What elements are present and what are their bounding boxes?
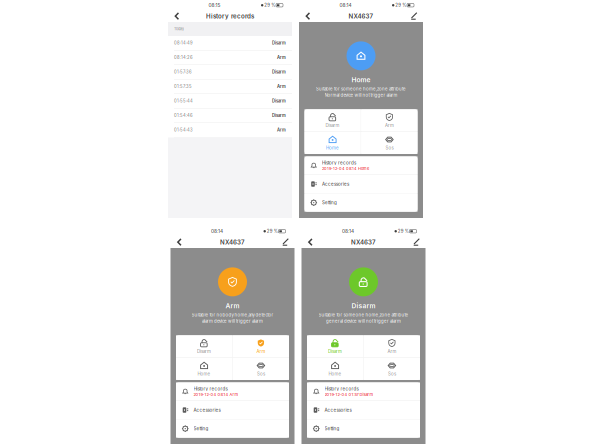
button[interactable]: Disarm: [176, 335, 232, 357]
staticText: Suitable for nobody home,any detector: [191, 312, 273, 318]
button[interactable]: History records: [304, 156, 417, 174]
staticText: NX4637: [351, 238, 376, 246]
staticText: History records: [322, 160, 356, 165]
staticText: Disarm: [272, 98, 286, 103]
button[interactable]: Setting: [307, 420, 420, 438]
staticText: 01:57:36: [174, 69, 192, 74]
button[interactable]: Edit: [405, 10, 423, 22]
button[interactable]: History records: [176, 382, 289, 400]
staticText: Normal device will not trigger alarm: [324, 93, 397, 98]
staticText: Today: [174, 27, 184, 31]
staticText: 08:15: [208, 2, 220, 8]
staticText: Setting: [193, 426, 208, 431]
staticText: 08:14:26: [174, 55, 193, 60]
staticText: 01:55:44: [174, 98, 193, 103]
button[interactable]: Home: [307, 358, 363, 380]
staticText: Sos: [385, 145, 393, 151]
staticText: Accessories: [324, 407, 351, 413]
button[interactable]: Arm: [361, 109, 417, 131]
staticText: 01:57:35: [174, 84, 192, 89]
button[interactable]: Arm: [233, 335, 289, 357]
staticText: 2019-12-04 08:14 Arm: [193, 392, 238, 397]
staticText: Accessories: [322, 181, 349, 187]
staticText: Suitable for someone home,zone attribute: [316, 86, 406, 92]
staticText: Disarm: [272, 69, 286, 74]
staticText: History records: [324, 386, 358, 391]
staticText: 29 %: [395, 3, 406, 8]
button[interactable]: Arm: [364, 335, 420, 357]
button[interactable]: Disarm: [307, 335, 363, 357]
button[interactable]: Back: [301, 236, 319, 248]
staticText: Disarm: [197, 349, 211, 354]
staticText: Arm: [256, 349, 265, 354]
button[interactable]: History records: [307, 382, 420, 400]
staticText: History records: [206, 12, 254, 20]
staticText: 08:14:49: [174, 40, 193, 45]
staticText: Home: [198, 371, 211, 377]
staticText: 2019-12-04 01:57 Disarm: [324, 392, 373, 397]
button[interactable]: Setting: [304, 194, 417, 212]
button[interactable]: Sos: [233, 358, 289, 380]
staticText: Sos: [388, 371, 396, 377]
staticText: Suitable for someone home,zone attribute: [318, 312, 408, 318]
staticText: Disarm: [326, 123, 340, 128]
button[interactable]: Sos: [361, 132, 417, 154]
staticText: Home: [329, 371, 342, 377]
button[interactable]: Sos: [364, 358, 420, 380]
button[interactable]: Edit: [276, 236, 294, 248]
staticText: NX4637: [348, 12, 373, 20]
staticText: 29 %: [398, 229, 409, 234]
staticText: Arm: [385, 123, 394, 128]
staticText: Setting: [324, 426, 339, 431]
staticText: 29 %: [267, 229, 278, 234]
staticText: 29 %: [264, 3, 275, 8]
button[interactable]: Accessories: [176, 401, 289, 419]
staticText: 08:14: [211, 228, 223, 234]
button[interactable]: Disarm: [304, 109, 361, 131]
staticText: 08:14: [339, 2, 351, 8]
button[interactable]: Accessories: [307, 401, 420, 419]
staticText: Disarm: [272, 40, 286, 45]
staticText: Arm: [277, 84, 286, 89]
button[interactable]: Home: [176, 358, 232, 380]
staticText: Arm: [277, 127, 286, 132]
staticText: alarm device will trigger alarm: [202, 319, 263, 324]
staticText: 2019-12-04 08:14 Home: [322, 166, 369, 171]
button[interactable]: Back: [168, 10, 186, 22]
staticText: NX4637: [220, 238, 245, 246]
staticText: general device will not trigger alarm: [326, 319, 401, 324]
button[interactable]: Edit: [407, 236, 425, 248]
button[interactable]: Back: [170, 236, 188, 248]
staticText: 01:54:43: [174, 127, 193, 132]
staticText: History records: [193, 386, 227, 391]
staticText: Accessories: [193, 407, 220, 413]
button[interactable]: Back: [299, 10, 317, 22]
staticText: Disarm: [272, 113, 286, 118]
button[interactable]: Setting: [176, 420, 289, 438]
staticText: Arm: [225, 302, 239, 310]
staticText: Home: [351, 76, 370, 84]
staticText: Arm: [277, 55, 286, 60]
staticText: 01:54:46: [174, 113, 193, 118]
button[interactable]: Accessories: [304, 175, 417, 193]
staticText: 08:14: [342, 228, 354, 234]
staticText: Disarm: [351, 302, 375, 310]
button[interactable]: Home: [304, 132, 361, 154]
staticText: Disarm: [328, 349, 342, 354]
staticText: Arm: [387, 349, 396, 354]
staticText: Home: [326, 145, 339, 151]
staticText: Setting: [322, 200, 337, 205]
staticText: Sos: [257, 371, 265, 377]
